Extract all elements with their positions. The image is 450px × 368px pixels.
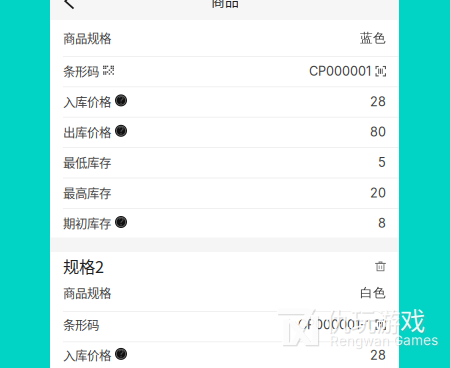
button[interactable]: 出库价格 <box>50 117 399 147</box>
button[interactable]: 最低库存 <box>50 147 399 178</box>
button[interactable]: 商品规格 <box>50 20 399 56</box>
staticText: 入库价格 <box>63 93 111 111</box>
staticText: 仇玩游戏 <box>326 302 426 339</box>
staticText: 商品规格 <box>63 29 111 47</box>
button[interactable]: 最高库存 <box>50 178 399 208</box>
staticText: 仇玩游戏 <box>325 301 425 338</box>
staticText: 80 <box>370 124 386 140</box>
staticText: ? <box>118 347 123 360</box>
staticText: 条形码 <box>63 316 99 334</box>
staticText: CP000001 <box>309 63 371 79</box>
staticText: 商品规格 <box>63 284 111 302</box>
staticText: 入库价格 <box>63 346 111 364</box>
staticText: ? <box>118 124 123 137</box>
button[interactable]: Back <box>50 0 94 15</box>
button[interactable]: 入库价格 <box>50 86 399 117</box>
button[interactable]: 期初库存 <box>50 208 399 238</box>
staticText: 20 <box>370 185 386 200</box>
staticText: 28 <box>370 94 386 109</box>
staticText: ? <box>118 94 123 106</box>
staticText: 8 <box>378 215 386 231</box>
staticText: 最高库存 <box>63 184 111 202</box>
staticText: 出库价格 <box>63 123 111 141</box>
staticText: 条形码 <box>63 62 99 80</box>
staticText: 5 <box>378 155 386 170</box>
staticText: 最低库存 <box>63 153 111 171</box>
button[interactable]: Delete <box>375 260 386 271</box>
staticText: 蓝色 <box>360 30 386 46</box>
staticText: Rengwan Games <box>329 332 438 348</box>
button[interactable]: 入库价格 <box>50 341 399 368</box>
button[interactable]: 商品规格 <box>50 280 399 311</box>
staticText: ? <box>118 215 123 228</box>
staticText: Rengwan Games <box>330 333 439 349</box>
button[interactable]: 条形码 <box>50 56 399 86</box>
button[interactable]: 条形码 <box>50 311 399 341</box>
staticText: CP000001-1 <box>298 317 371 332</box>
staticText: 规格2 <box>63 254 104 278</box>
staticText: 期初库存 <box>63 214 111 232</box>
staticText: 商品 <box>211 0 239 10</box>
staticText: 白色 <box>360 285 386 301</box>
staticText: 28 <box>370 347 386 363</box>
